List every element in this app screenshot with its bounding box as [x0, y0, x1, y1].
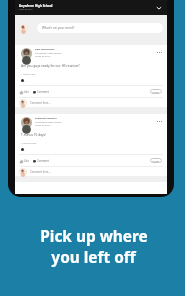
staticText: Anywhere High School [19, 4, 53, 8]
staticText: 1 [25, 148, 27, 151]
staticText: 1 minute ago [21, 73, 36, 76]
staticText: Like [24, 90, 29, 94]
button[interactable]: Follow [150, 89, 162, 94]
staticText: Follow [152, 90, 160, 93]
staticText: Are you guys ready for our HS reunion? [21, 64, 80, 68]
button[interactable]: Comment [33, 158, 50, 164]
staticText: Comment here... [30, 170, 51, 174]
staticText: Comment [37, 159, 50, 163]
staticText: Class of 2012 [35, 54, 51, 57]
staticText: T-minus 10 days! [21, 133, 47, 137]
button[interactable]: Expand group menu [153, 2, 164, 13]
button[interactable]: More options [155, 48, 164, 57]
staticText: Samantha Windsor [35, 117, 57, 120]
staticText: Gary Wonderville [35, 48, 55, 51]
button[interactable]: Follow [150, 158, 162, 163]
button[interactable]: More options [155, 117, 164, 126]
staticText: Comment [37, 90, 50, 94]
staticText: 1 [25, 79, 27, 82]
staticText: 2 minutes ago [21, 142, 37, 145]
button[interactable]: Comment [33, 89, 50, 95]
staticText: Anywhere High School [35, 120, 62, 123]
staticText: Like [24, 159, 29, 163]
button[interactable]: Like [20, 89, 29, 95]
staticText: Anywhere High School [35, 51, 62, 54]
staticText: you left off [51, 247, 136, 268]
staticText: What's on your mind? [42, 26, 75, 30]
staticText: Class of 2012 [35, 123, 51, 126]
staticText: Pick up where [40, 226, 148, 247]
staticText: Class of 2012 [19, 8, 33, 11]
staticText: Comment here... [30, 101, 51, 105]
staticText: Follow [152, 159, 160, 162]
button[interactable]: Like [20, 158, 29, 164]
button[interactable]: What's on your mind? [37, 23, 163, 33]
